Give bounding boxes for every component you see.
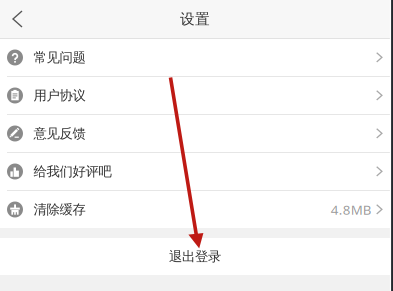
button[interactable]: Back [0, 0, 40, 38]
staticText: 常见问题 [33, 49, 85, 66]
staticText: 设置 [180, 10, 210, 28]
staticText: 用户协议 [33, 87, 85, 104]
button[interactable]: 用户协议 [0, 77, 390, 114]
button[interactable]: 给我们好评吧 [0, 153, 390, 190]
staticText: 退出登录 [169, 248, 221, 265]
staticText: 4.8MB [331, 201, 372, 218]
button[interactable]: 意见反馈 [0, 115, 390, 152]
button[interactable]: 清除缓存 [0, 191, 390, 228]
staticText: 给我们好评吧 [33, 163, 111, 180]
button[interactable]: 常见问题 [0, 39, 390, 76]
staticText: 清除缓存 [33, 201, 85, 218]
staticText: 意见反馈 [33, 125, 85, 142]
button[interactable]: 退出登录 [0, 238, 390, 275]
